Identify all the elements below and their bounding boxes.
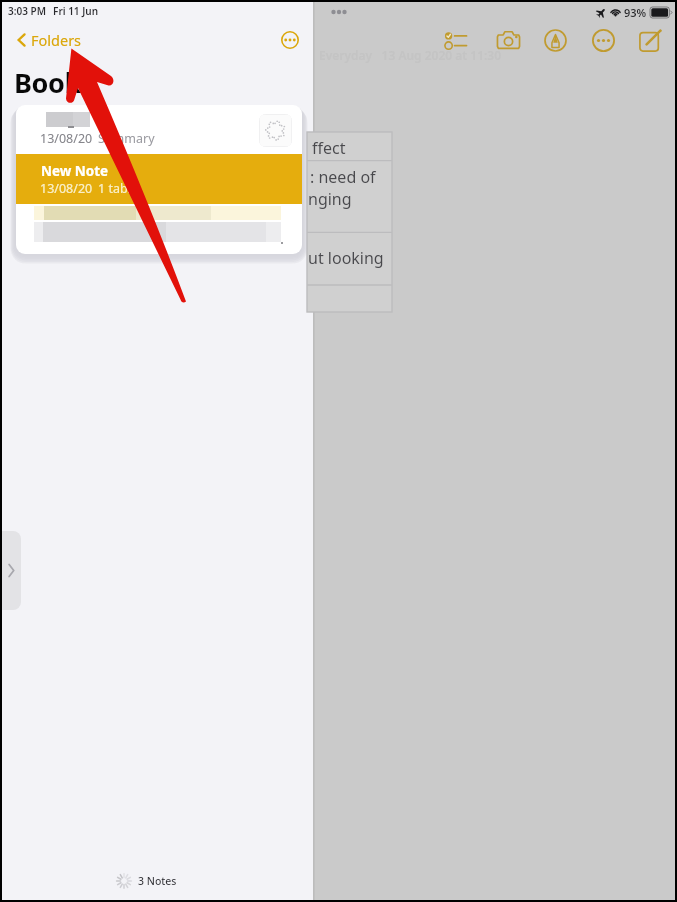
staticText: Summary	[98, 130, 155, 147]
button[interactable]	[16, 204, 302, 254]
staticText: Fri 11 Jun	[53, 4, 99, 18]
staticText: 13/08/20	[40, 130, 93, 147]
staticText: : need of	[310, 166, 376, 188]
staticText: Everyday 13 Aug 2020 at 11:30	[319, 47, 502, 63]
button[interactable]: New Note	[16, 154, 302, 204]
staticText: New Note	[41, 162, 109, 180]
staticText: 13/08/20	[40, 180, 93, 197]
button[interactable]: Camera	[492, 24, 524, 56]
staticText: 93%	[624, 5, 647, 19]
button[interactable]: 13/08/20	[16, 105, 302, 156]
staticText: Books	[14, 64, 94, 101]
button[interactable]: More options	[278, 28, 302, 52]
button[interactable]: More	[587, 24, 619, 56]
button[interactable]: Markup	[539, 24, 571, 56]
staticText: 1 table	[98, 180, 138, 197]
staticText: 3:03 PM	[8, 4, 46, 18]
staticText: Folders	[31, 30, 82, 50]
button[interactable]: Folders	[17, 27, 82, 53]
staticText: ffect	[312, 137, 346, 159]
button[interactable]: Compose	[634, 24, 666, 56]
staticText: 3 Notes	[138, 874, 177, 888]
staticText: nging	[308, 188, 352, 210]
button[interactable]: Show sidebar	[2, 531, 21, 610]
staticText: ut looking	[308, 247, 384, 269]
button[interactable]: Checklist	[439, 24, 471, 56]
